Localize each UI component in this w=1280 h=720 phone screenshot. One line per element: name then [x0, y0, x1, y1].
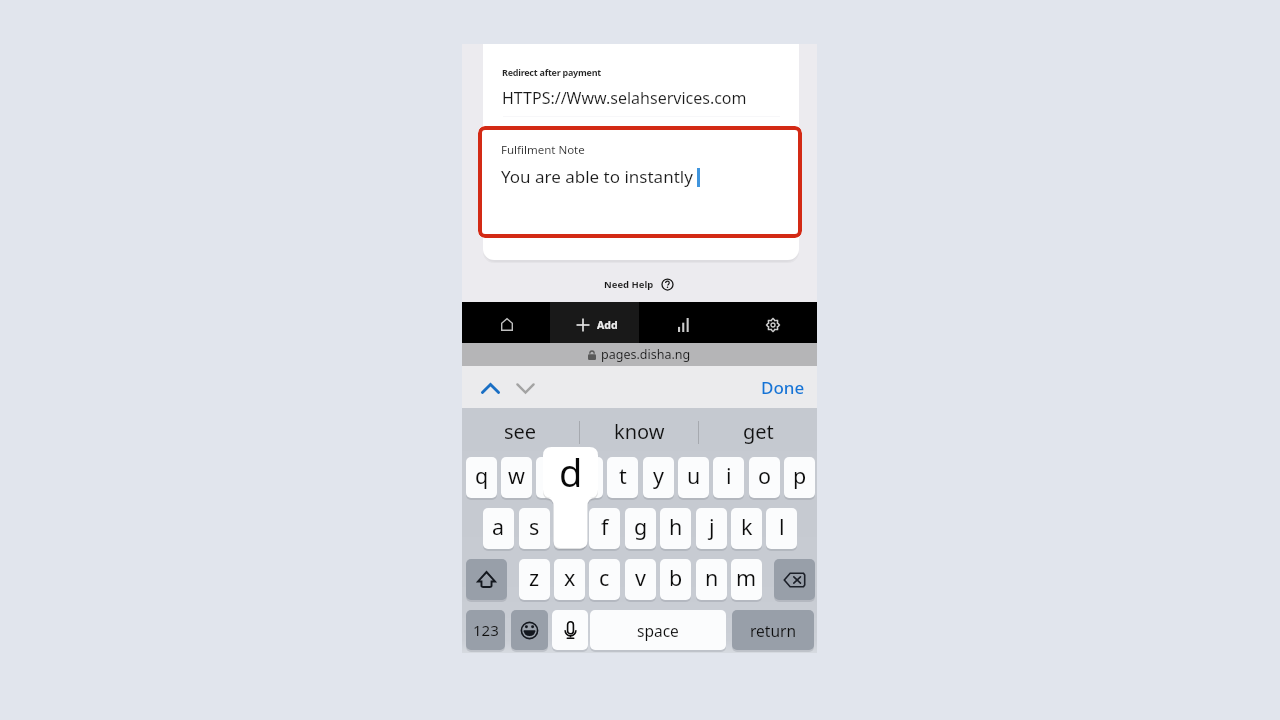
button[interactable]: d	[554, 509, 585, 550]
staticText: s	[529, 512, 540, 541]
button[interactable]: pages.disha.ng	[462, 343, 817, 366]
staticText: f	[601, 512, 609, 541]
button[interactable]: b	[660, 560, 691, 601]
staticText: j	[709, 512, 715, 541]
button[interactable]: Need Help	[604, 274, 674, 294]
staticText: h	[669, 512, 683, 541]
button[interactable]: Done	[761, 366, 805, 408]
staticText: o	[758, 461, 772, 490]
staticText: g	[634, 512, 648, 541]
button[interactable]: Dictate	[552, 611, 588, 651]
button[interactable]: Fulfilment Note	[478, 126, 802, 238]
staticText: x	[564, 563, 576, 592]
button[interactable]: p	[784, 458, 815, 499]
button[interactable]: see	[462, 408, 579, 452]
button[interactable]: z	[519, 560, 550, 601]
button[interactable]: Backspace	[774, 560, 815, 601]
button[interactable]: e	[536, 458, 567, 499]
staticText: Add	[597, 318, 618, 332]
button[interactable]: m	[731, 560, 762, 601]
button[interactable]: o	[749, 458, 780, 499]
staticText: w	[508, 461, 525, 490]
button[interactable]: c	[589, 560, 620, 601]
staticText: k	[741, 512, 753, 541]
staticText: y	[653, 461, 664, 490]
button[interactable]: x	[554, 560, 585, 601]
staticText: Redirect after payment	[502, 66, 601, 78]
button[interactable]: Settings	[728, 302, 817, 343]
button[interactable]: Previous field	[471, 366, 509, 408]
button[interactable]: return	[732, 611, 814, 651]
button[interactable]: space	[590, 611, 726, 651]
staticText: p	[793, 461, 807, 490]
staticText: Need Help	[604, 278, 654, 291]
button[interactable]: Add	[550, 302, 639, 343]
staticText: c	[599, 563, 610, 592]
staticText: m	[736, 563, 757, 592]
button[interactable]: s	[519, 509, 550, 550]
button[interactable]: w	[501, 458, 532, 499]
button[interactable]: v	[625, 560, 656, 601]
staticText: a	[492, 512, 505, 541]
staticText: u	[687, 461, 701, 490]
staticText: pages.disha.ng	[601, 346, 691, 363]
button[interactable]: r	[572, 458, 603, 499]
staticText: know	[614, 418, 665, 445]
button[interactable]: j	[696, 509, 727, 550]
button[interactable]: t	[607, 458, 638, 499]
button[interactable]: y	[643, 458, 674, 499]
button[interactable]: g	[625, 509, 656, 550]
button[interactable]: h	[660, 509, 691, 550]
button[interactable]: f	[589, 509, 620, 550]
staticText: You are able to instantly	[501, 165, 693, 188]
staticText: get	[743, 418, 774, 445]
staticText: d	[559, 446, 583, 498]
button[interactable]: k	[731, 509, 762, 550]
staticText: b	[669, 563, 683, 592]
button[interactable]: Statistics	[639, 302, 728, 343]
staticText: t	[619, 461, 627, 490]
staticText: return	[750, 620, 796, 641]
button[interactable]: know	[580, 408, 698, 452]
staticText: 123	[473, 620, 499, 640]
staticText: Done	[761, 376, 805, 399]
button[interactable]: a	[483, 509, 514, 550]
staticText: q	[475, 461, 489, 490]
button[interactable]: u	[678, 458, 709, 499]
button[interactable]: Next field	[506, 366, 544, 408]
staticText: HTTPS://Www.selahservices.com	[502, 87, 747, 109]
button[interactable]: Shift	[466, 560, 507, 601]
staticText: Fulfilment Note	[501, 142, 585, 158]
staticText: n	[705, 563, 719, 592]
button[interactable]: Emoji	[511, 611, 548, 651]
staticText: v	[635, 563, 646, 592]
staticText: l	[779, 512, 785, 541]
button[interactable]: i	[713, 458, 744, 499]
button[interactable]: n	[696, 560, 727, 601]
staticText: i	[726, 461, 732, 490]
button[interactable]: 123	[466, 611, 505, 651]
staticText: z	[529, 563, 540, 592]
staticText: see	[504, 418, 537, 445]
button[interactable]: l	[766, 509, 797, 550]
staticText: space	[637, 620, 679, 641]
button[interactable]: get	[699, 408, 817, 452]
button[interactable]: q	[466, 458, 497, 499]
button[interactable]: Home	[462, 302, 550, 343]
